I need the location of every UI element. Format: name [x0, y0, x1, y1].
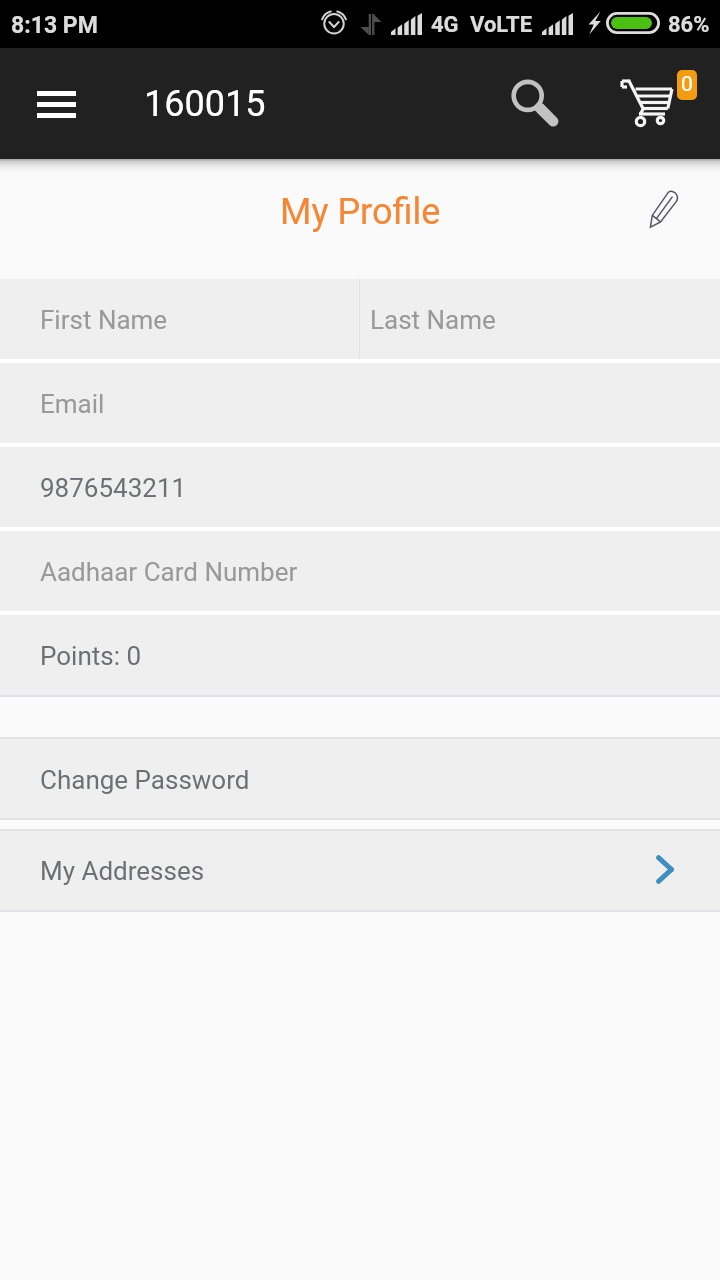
staticText: 86% — [668, 12, 710, 38]
button[interactable]: Change Password — [0, 739, 720, 818]
staticText: 9876543211 — [40, 473, 187, 503]
button[interactable]: Last Name — [360, 279, 720, 359]
staticText: My Addresses — [40, 856, 205, 886]
staticText: 160015 — [144, 83, 266, 125]
button[interactable]: Aadhaar Card Number — [0, 531, 720, 611]
button[interactable]: First Name — [0, 279, 359, 359]
staticText: Email — [40, 389, 105, 419]
button[interactable]: Edit profile — [636, 178, 692, 234]
button[interactable]: Search — [499, 66, 567, 134]
button[interactable]: Points: 0 — [0, 615, 720, 695]
button[interactable]: My Addresses — [0, 831, 720, 910]
staticText: Last Name — [370, 305, 496, 335]
staticText: 4G — [431, 12, 459, 38]
staticText: VoLTE — [470, 12, 533, 38]
staticText: Points: 0 — [40, 641, 142, 671]
staticText: Aadhaar Card Number — [40, 557, 298, 587]
staticText: My Profile — [280, 191, 441, 233]
staticText: 0 — [681, 72, 693, 97]
staticText: Change Password — [40, 765, 250, 795]
staticText: 8:13 PM — [11, 12, 98, 39]
button[interactable]: 9876543211 — [0, 447, 720, 527]
button[interactable]: Open navigation menu — [22, 70, 90, 138]
button[interactable]: Email — [0, 363, 720, 443]
staticText: First Name — [40, 305, 168, 335]
button[interactable]: Shopping cart, 0 items — [615, 60, 701, 142]
